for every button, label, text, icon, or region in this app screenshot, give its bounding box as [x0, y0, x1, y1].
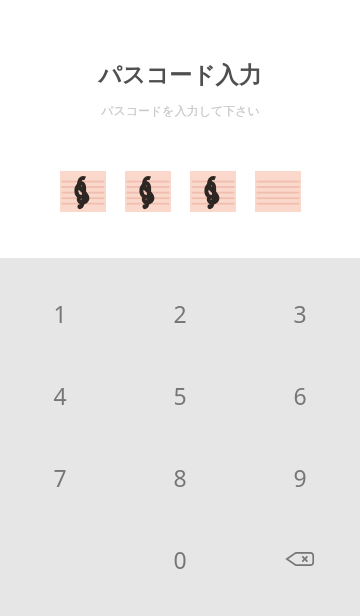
button[interactable]: 9 — [240, 436, 360, 518]
button[interactable]: 4 — [0, 354, 120, 436]
staticText: パスコードを入力して下さい — [101, 103, 260, 118]
button[interactable]: 3 — [240, 272, 360, 354]
staticText: パスコード入力 — [98, 61, 262, 90]
staticText: 3 — [293, 298, 307, 329]
button[interactable]: 2 — [120, 272, 240, 354]
staticText: 8 — [173, 462, 187, 493]
button[interactable]: Delete — [240, 518, 360, 600]
button[interactable]: 0 — [120, 518, 240, 600]
staticText: 1 — [53, 298, 67, 329]
button[interactable]: 7 — [0, 436, 120, 518]
button[interactable]: 5 — [120, 354, 240, 436]
button[interactable]: 6 — [240, 354, 360, 436]
staticText: 6 — [293, 380, 307, 411]
staticText: 4 — [53, 380, 67, 411]
staticText: 0 — [173, 544, 187, 575]
staticText: 5 — [173, 380, 187, 411]
button[interactable]: 8 — [120, 436, 240, 518]
button[interactable]: 1 — [0, 272, 120, 354]
staticText: 7 — [53, 462, 67, 493]
staticText: 2 — [173, 298, 187, 329]
staticText: 9 — [293, 462, 307, 493]
